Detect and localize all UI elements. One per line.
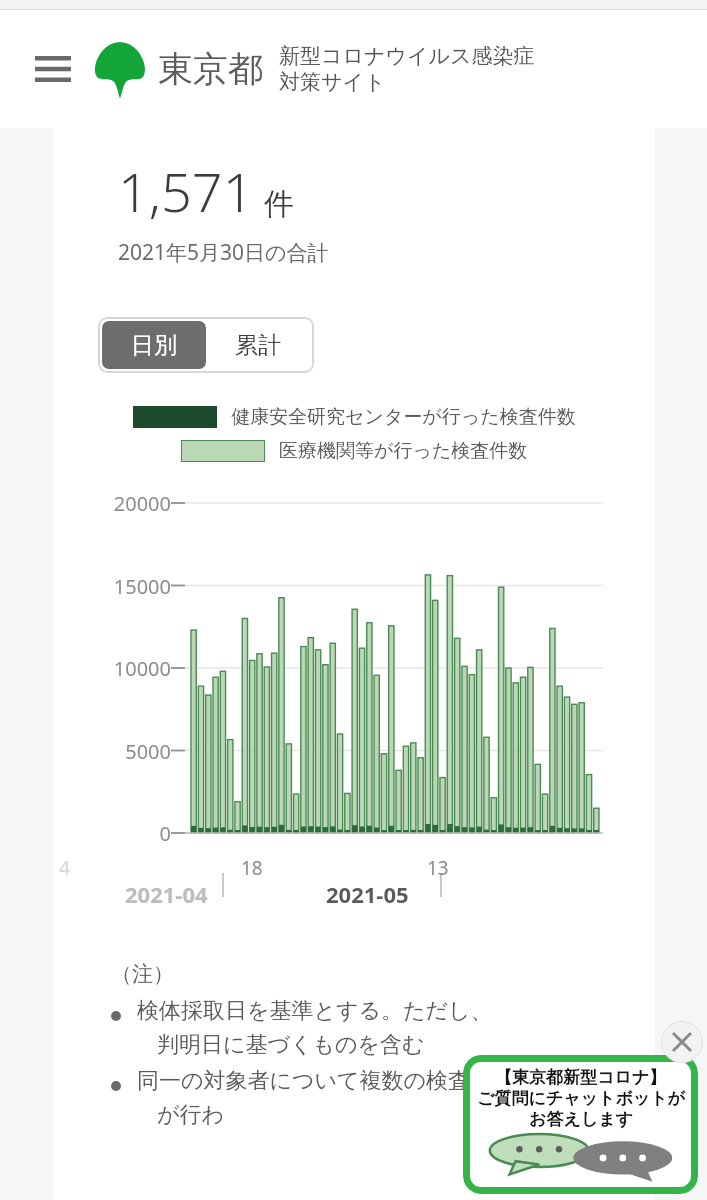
staticText: 0	[53, 820, 171, 847]
button[interactable]: 日別	[102, 321, 206, 369]
button[interactable]: Close chat banner	[661, 1021, 703, 1063]
staticText: 判明日に基づくものを含む	[157, 1031, 425, 1059]
staticText: お答えします	[529, 1109, 633, 1130]
staticText: 2021-05	[326, 879, 409, 909]
staticText: 新型コロナウイルス感染症	[279, 43, 535, 69]
staticText: 15000	[53, 573, 171, 600]
staticText: 【東京都新型コロナ】	[495, 1067, 667, 1088]
button[interactable]: 【東京都新型コロナ】	[463, 1055, 698, 1194]
staticText: 東京都	[158, 47, 263, 91]
staticText: 13	[427, 855, 449, 881]
staticText: が行わ	[157, 1101, 225, 1129]
staticText: ご質問にチャットボットが	[477, 1088, 685, 1109]
staticText: 検体採取日を基準とする。ただし、	[137, 997, 493, 1025]
staticText: 1,571	[118, 154, 254, 228]
staticText: 2021年5月30日の合計	[118, 238, 329, 267]
staticText: 健康安全研究センターが行った検査件数	[231, 405, 576, 429]
staticText: 累計	[235, 331, 281, 360]
staticText: 4	[59, 855, 70, 881]
staticText: 2021-04	[125, 879, 208, 909]
staticText: 医療機関等が行った検査件数	[279, 439, 528, 463]
staticText: 対策サイト	[279, 69, 386, 95]
staticText: 日別	[131, 331, 177, 360]
staticText: （注）	[111, 961, 174, 987]
staticText: 20000	[53, 490, 171, 517]
staticText: 18	[241, 855, 263, 881]
staticText: 件	[264, 185, 294, 223]
button[interactable]: 累計	[206, 321, 310, 369]
staticText: 同一の対象者について複数の検査	[137, 1067, 471, 1095]
button[interactable]: Open navigation menu	[24, 40, 82, 98]
staticText: 5000	[53, 738, 171, 765]
staticText: 10000	[53, 655, 171, 682]
